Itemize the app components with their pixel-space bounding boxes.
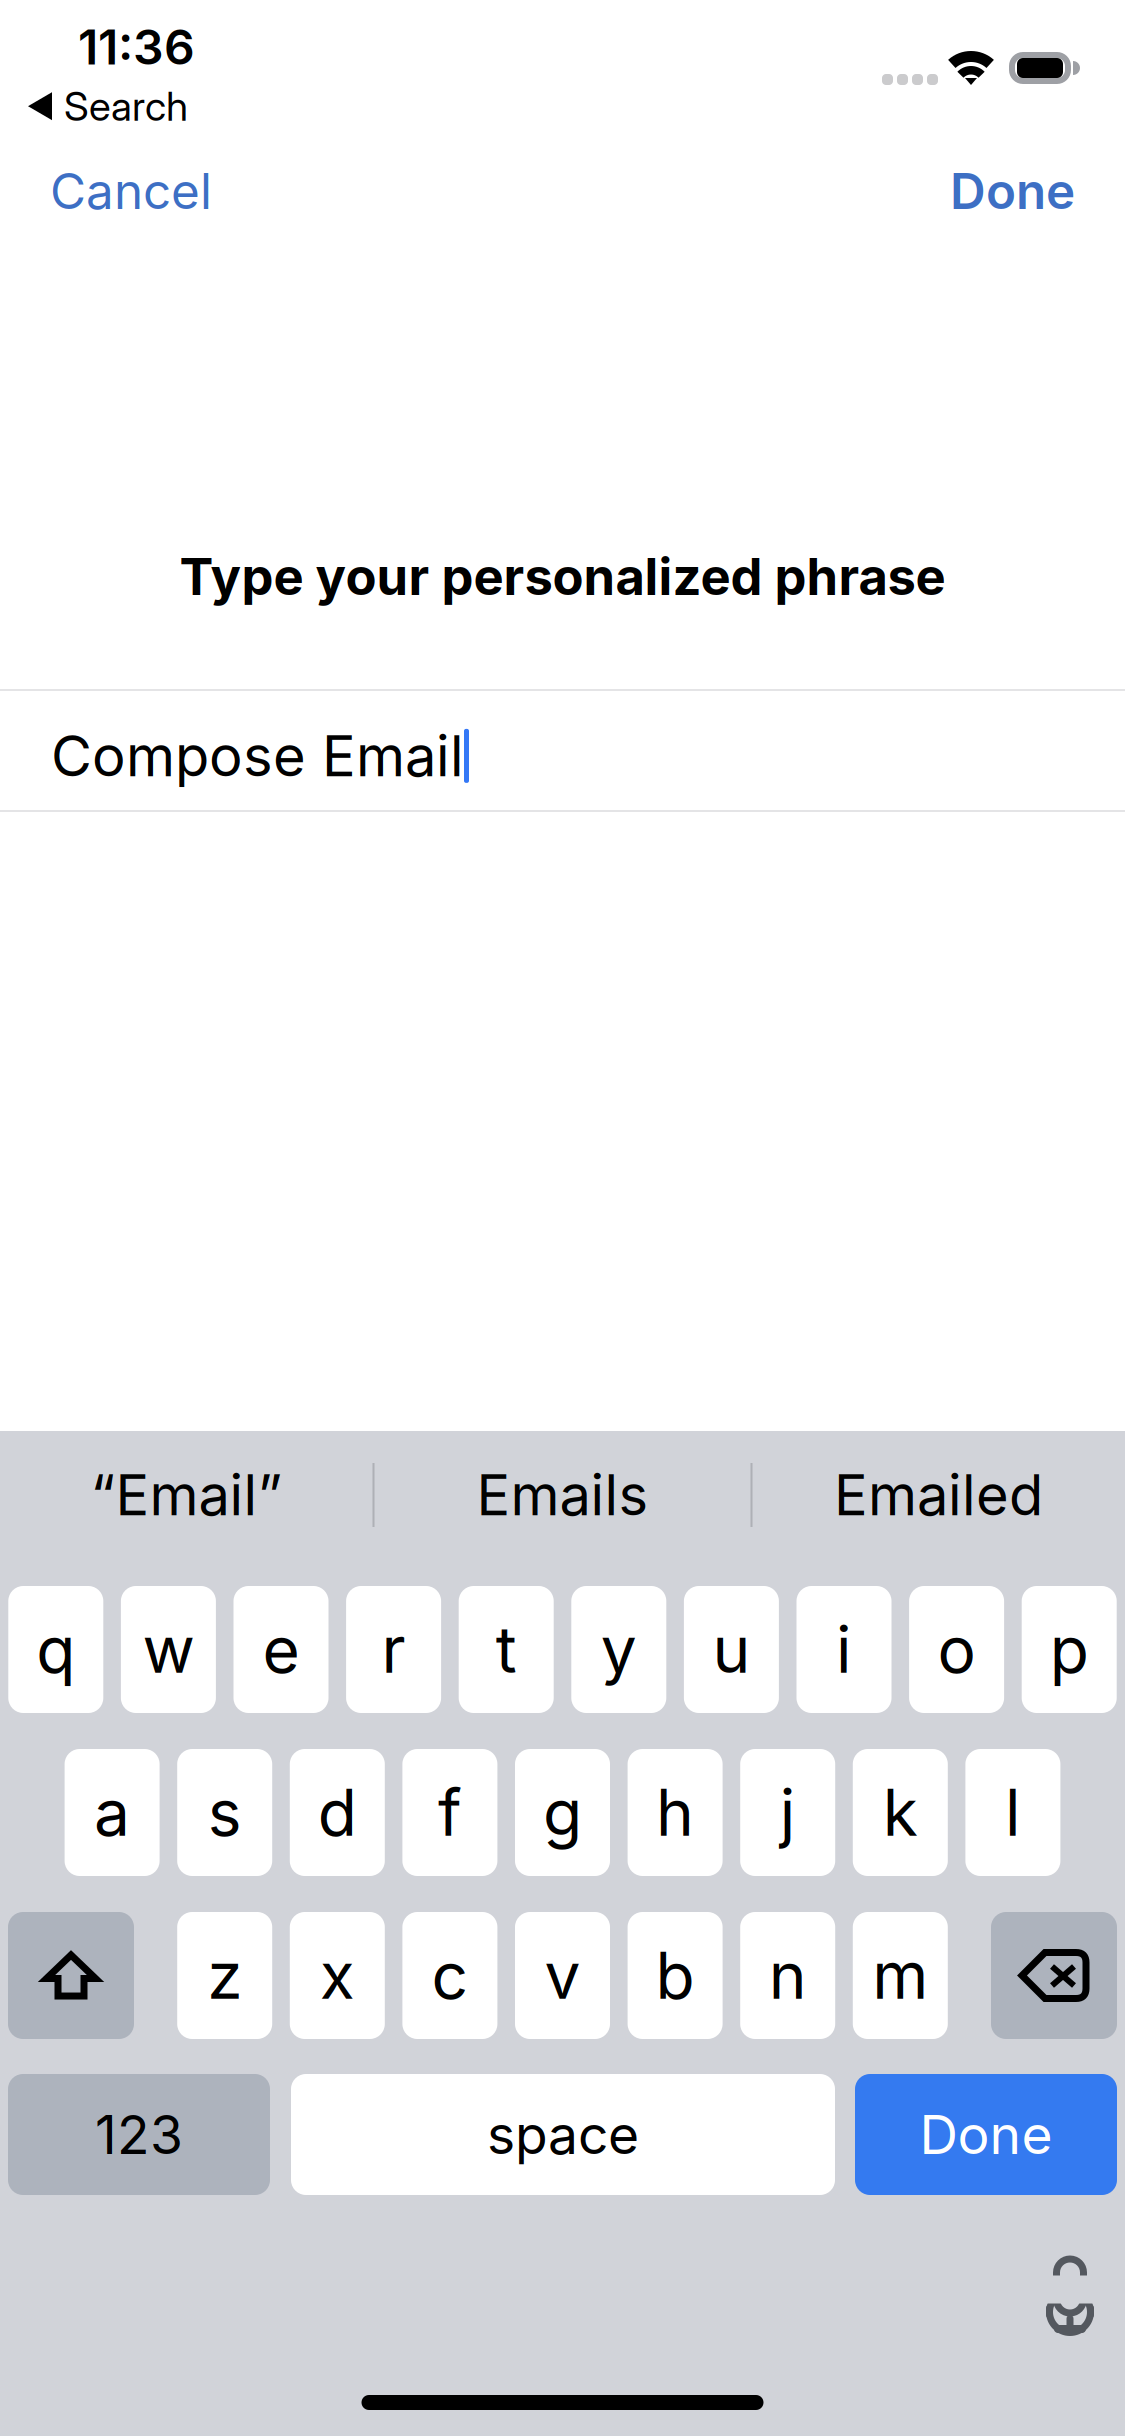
staticText: Compose Email: [51, 722, 464, 790]
staticText: Done: [950, 161, 1075, 221]
button[interactable]: i: [796, 1586, 891, 1713]
staticText: y: [601, 1611, 637, 1688]
staticText: 11:36: [78, 18, 195, 76]
button[interactable]: x: [290, 1912, 385, 2039]
button[interactable]: m: [853, 1912, 948, 2039]
button[interactable]: q: [8, 1586, 103, 1713]
button[interactable]: “Email”: [0, 1431, 372, 1559]
button[interactable]: g: [515, 1749, 610, 1876]
staticText: j: [780, 1774, 796, 1851]
staticText: 123: [95, 2102, 183, 2167]
staticText: u: [712, 1611, 750, 1688]
staticText: l: [1005, 1774, 1021, 1851]
button[interactable]: s: [177, 1749, 272, 1876]
staticText: Emailed: [834, 1461, 1043, 1529]
staticText: i: [836, 1611, 852, 1688]
button[interactable]: Done: [932, 141, 1093, 241]
staticText: x: [320, 1937, 355, 2014]
button[interactable]: n: [740, 1912, 835, 2039]
staticText: “Email”: [90, 1461, 282, 1529]
button[interactable]: o: [909, 1586, 1004, 1713]
staticText: f: [438, 1774, 462, 1851]
button[interactable]: k: [853, 1749, 948, 1876]
button[interactable]: Cancel: [32, 141, 230, 241]
button[interactable]: 123: [8, 2074, 270, 2195]
staticText: g: [543, 1774, 582, 1851]
staticText: d: [318, 1774, 357, 1851]
staticText: v: [544, 1937, 580, 2014]
button[interactable]: c: [402, 1912, 497, 2039]
button[interactable]: p: [1022, 1586, 1117, 1713]
button[interactable]: Search: [22, 76, 194, 136]
button[interactable]: Emails: [374, 1431, 750, 1559]
button[interactable]: w: [121, 1586, 216, 1713]
button[interactable]: t: [459, 1586, 554, 1713]
staticText: h: [656, 1774, 694, 1851]
staticText: b: [656, 1937, 695, 2014]
staticText: o: [938, 1611, 976, 1688]
button[interactable]: d: [290, 1749, 385, 1876]
button[interactable]: space: [291, 2074, 835, 2195]
button[interactable]: y: [571, 1586, 666, 1713]
staticText: n: [769, 1937, 807, 2014]
button[interactable]: l: [965, 1749, 1060, 1876]
button[interactable]: f: [402, 1749, 497, 1876]
staticText: Search: [64, 82, 188, 130]
button[interactable]: r: [346, 1586, 441, 1713]
staticText: t: [496, 1611, 517, 1688]
staticText: w: [142, 1611, 194, 1688]
button[interactable]: v: [515, 1912, 610, 2039]
staticText: k: [883, 1774, 918, 1851]
staticText: space: [487, 2102, 639, 2167]
button[interactable]: j: [740, 1749, 835, 1876]
staticText: Done: [919, 2102, 1052, 2167]
staticText: r: [382, 1611, 406, 1688]
button[interactable]: e: [233, 1586, 328, 1713]
button[interactable]: Dictation: [1030, 2243, 1110, 2349]
button[interactable]: Emailed: [752, 1431, 1124, 1559]
staticText: s: [208, 1774, 242, 1851]
button[interactable]: a: [65, 1749, 160, 1876]
staticText: z: [207, 1937, 242, 2014]
staticText: Type your personalized phrase: [179, 546, 945, 607]
staticText: Cancel: [50, 161, 212, 221]
staticText: a: [94, 1774, 130, 1851]
button[interactable]: b: [628, 1912, 723, 2039]
button[interactable]: z: [177, 1912, 272, 2039]
staticText: p: [1050, 1611, 1089, 1688]
staticText: q: [36, 1611, 75, 1688]
button[interactable]: h: [628, 1749, 723, 1876]
staticText: m: [872, 1937, 928, 2014]
staticText: c: [431, 1937, 468, 2014]
button[interactable]: Shift: [8, 1912, 134, 2039]
staticText: Emails: [476, 1461, 648, 1529]
staticText: e: [262, 1611, 299, 1688]
button[interactable]: Delete: [991, 1912, 1117, 2039]
button[interactable]: Done: [855, 2074, 1117, 2195]
button[interactable]: u: [684, 1586, 779, 1713]
